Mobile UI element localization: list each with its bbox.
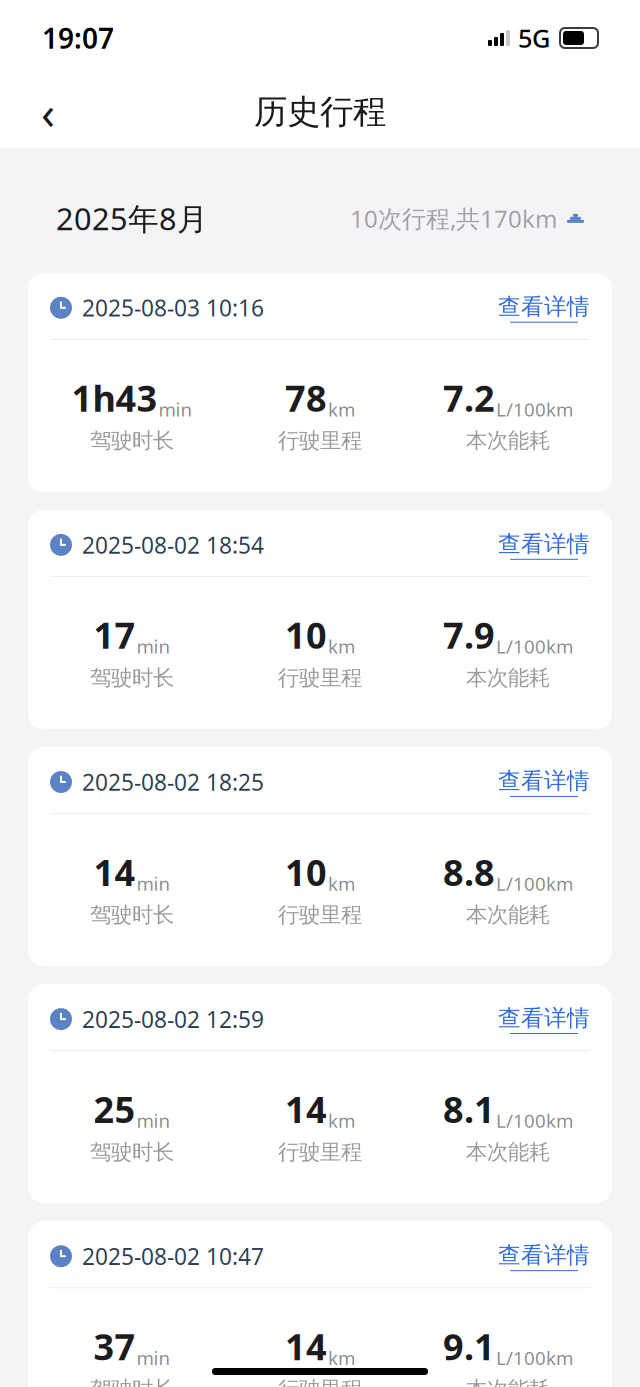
staticText: 14 bbox=[285, 1322, 327, 1370]
button[interactable]: 2025-08-02 18:54 bbox=[28, 510, 612, 729]
button[interactable]: 2025-08-03 10:16 bbox=[28, 273, 612, 492]
staticText: ‹ bbox=[41, 82, 55, 142]
staticText: 本次能耗 bbox=[466, 428, 550, 454]
staticText: 本次能耗 bbox=[466, 902, 550, 928]
staticText: 10次行程,共170km bbox=[350, 202, 557, 234]
button[interactable]: 2025-08-02 10:47 bbox=[28, 1221, 612, 1387]
staticText: 本次能耗 bbox=[466, 665, 550, 691]
staticText: 2025-08-02 10:47 bbox=[82, 1241, 264, 1271]
staticText: min bbox=[136, 871, 170, 896]
staticText: km bbox=[328, 871, 355, 896]
staticText: L/100km bbox=[496, 1345, 573, 1370]
staticText: km bbox=[328, 634, 355, 659]
staticText: min bbox=[136, 634, 170, 659]
button[interactable]: 查看详情 bbox=[498, 1241, 590, 1271]
staticText: 10 bbox=[285, 848, 327, 896]
button[interactable]: 返回 bbox=[22, 86, 74, 138]
staticText: 1h43 bbox=[71, 374, 157, 422]
staticText: 2025-08-02 12:59 bbox=[82, 1004, 264, 1034]
staticText: 查看详情 bbox=[498, 1241, 590, 1269]
staticText: 9.1 bbox=[443, 1322, 495, 1370]
staticText: 查看详情 bbox=[498, 293, 590, 321]
staticText: min bbox=[136, 1108, 170, 1133]
staticText: km bbox=[328, 1108, 355, 1133]
button[interactable]: 查看详情 bbox=[498, 530, 590, 560]
staticText: min bbox=[158, 397, 192, 422]
staticText: 本次能耗 bbox=[466, 1376, 550, 1387]
staticText: 历史行程 bbox=[254, 91, 386, 132]
button[interactable]: 2025-08-02 18:25 bbox=[28, 747, 612, 966]
staticText: 2025-08-02 18:54 bbox=[82, 530, 264, 560]
staticText: 7.2 bbox=[443, 374, 495, 422]
staticText: 8.1 bbox=[443, 1085, 495, 1133]
staticText: 本次能耗 bbox=[466, 1139, 550, 1165]
staticText: L/100km bbox=[496, 1108, 573, 1133]
staticText: km bbox=[328, 397, 355, 422]
staticText: 19:07 bbox=[42, 19, 114, 57]
staticText: 2025-08-03 10:16 bbox=[82, 293, 264, 323]
staticText: 查看详情 bbox=[498, 1004, 590, 1032]
staticText: 驾驶时长 bbox=[90, 902, 174, 928]
staticText: L/100km bbox=[496, 871, 573, 896]
button[interactable]: 10次行程,共170km bbox=[350, 202, 584, 234]
staticText: 驾驶时长 bbox=[90, 1376, 174, 1387]
staticText: km bbox=[328, 1345, 355, 1370]
staticText: L/100km bbox=[496, 397, 573, 422]
staticText: min bbox=[136, 1345, 170, 1370]
staticText: 驾驶时长 bbox=[90, 428, 174, 454]
staticText: 行驶里程 bbox=[278, 1376, 362, 1387]
button[interactable]: 查看详情 bbox=[498, 1004, 590, 1034]
staticText: L/100km bbox=[496, 634, 573, 659]
staticText: 查看详情 bbox=[498, 767, 590, 795]
staticText: 驾驶时长 bbox=[90, 665, 174, 691]
staticText: 行驶里程 bbox=[278, 902, 362, 928]
staticText: 14 bbox=[285, 1085, 327, 1133]
staticText: 2025-08-02 18:25 bbox=[82, 767, 264, 797]
button[interactable]: 查看详情 bbox=[498, 293, 590, 323]
staticText: 行驶里程 bbox=[278, 1139, 362, 1165]
staticText: 14 bbox=[93, 848, 135, 896]
staticText: 37 bbox=[93, 1322, 135, 1370]
staticText: 17 bbox=[93, 611, 135, 659]
staticText: 78 bbox=[285, 374, 327, 422]
staticText: 10 bbox=[285, 611, 327, 659]
staticText: 2025年8月 bbox=[56, 198, 208, 239]
staticText: 25 bbox=[93, 1085, 135, 1133]
staticText: 8.8 bbox=[443, 848, 495, 896]
button[interactable]: 2025-08-02 12:59 bbox=[28, 984, 612, 1203]
staticText: 5G bbox=[518, 21, 550, 55]
staticText: 7.9 bbox=[443, 611, 495, 659]
staticText: 行驶里程 bbox=[278, 665, 362, 691]
button[interactable]: 查看详情 bbox=[498, 767, 590, 797]
staticText: 驾驶时长 bbox=[90, 1139, 174, 1165]
staticText: 行驶里程 bbox=[278, 428, 362, 454]
staticText: 查看详情 bbox=[498, 530, 590, 558]
